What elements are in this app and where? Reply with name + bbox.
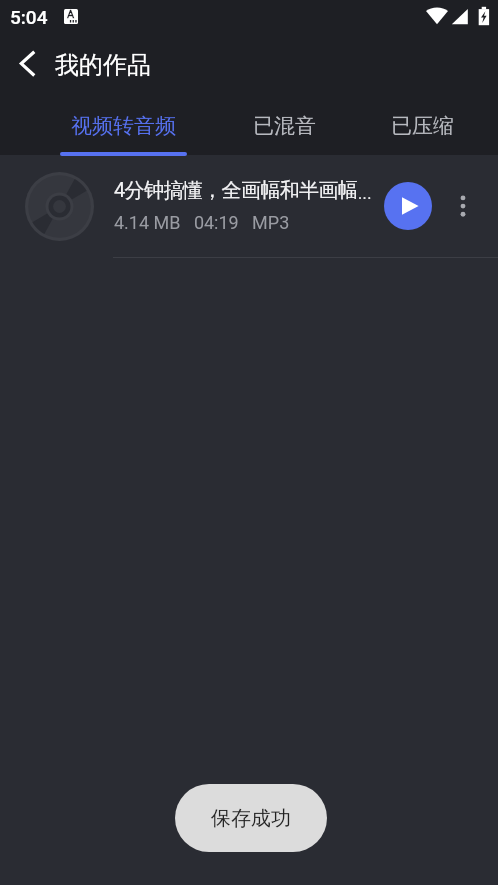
staticText: A [67, 9, 75, 21]
button[interactable]: 4分钟搞懂，全画幅和半画幅 [0, 155, 498, 258]
staticText: 视频转音频 [71, 113, 176, 139]
button[interactable]: 视频转音频 [31, 92, 216, 155]
staticText: 4分钟搞懂，全画幅和半画幅 [114, 178, 358, 203]
staticText: 已混音 [253, 113, 316, 139]
staticText: 已压缩 [391, 113, 454, 139]
button[interactable]: Play [384, 182, 432, 230]
staticText: 我的作品 [55, 50, 151, 80]
button[interactable]: 已压缩 [356, 92, 494, 155]
staticText: ... [358, 184, 372, 203]
staticText: 4.14 MB 04:19 MP3 [114, 212, 290, 233]
staticText: 保存成功 [211, 806, 291, 831]
staticText: 5:04 [10, 6, 48, 28]
button[interactable]: More options [441, 184, 485, 228]
button[interactable]: 已混音 [216, 92, 356, 155]
button[interactable]: Back [6, 42, 50, 86]
